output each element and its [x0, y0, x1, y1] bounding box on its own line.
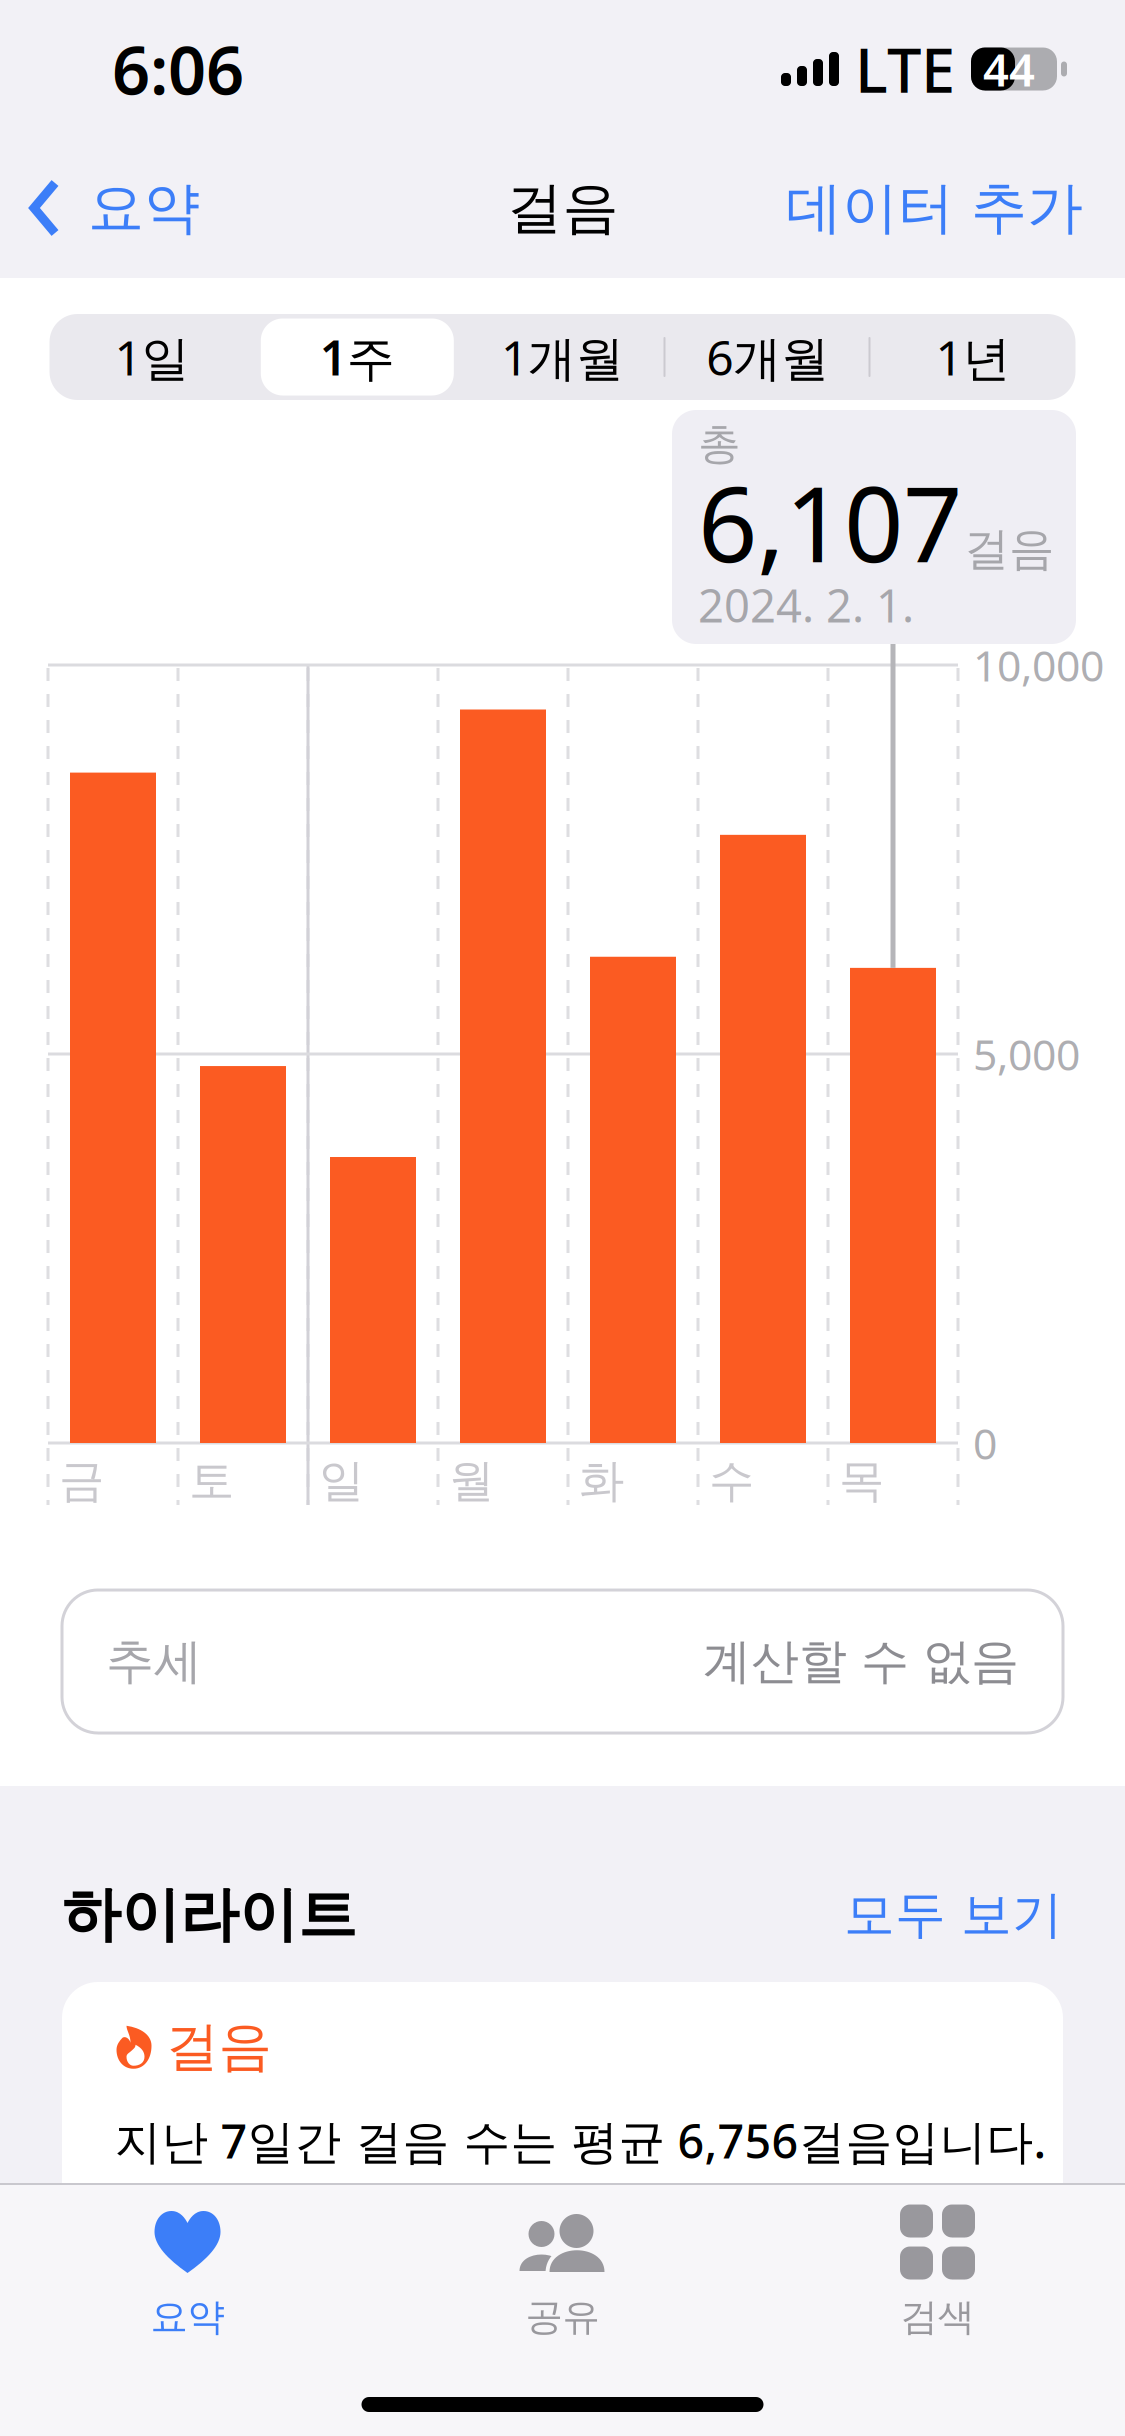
staticText: 6개월 [706, 325, 829, 389]
button[interactable]: 걸음 [62, 1982, 1063, 2242]
staticText: 계산할 수 없음 [703, 1632, 1019, 1691]
button[interactable]: 1개월 [460, 314, 665, 400]
staticText: 하이라이트 [62, 1879, 357, 1951]
button[interactable]: 데이터 추가 [786, 155, 1125, 261]
staticText: 공유 [525, 2294, 599, 2340]
staticText: 걸음 [165, 2014, 271, 2079]
staticText: 요약 [150, 2294, 224, 2340]
staticText: 6,107 [698, 453, 962, 591]
staticText: 요약 [88, 174, 200, 242]
staticText: 검색 [900, 2294, 974, 2340]
button[interactable]: 1년 [870, 314, 1075, 400]
staticText: 2024. 2. 1. [698, 575, 914, 635]
staticText: 지난 7일간 걸음 수는 평균 6,756걸음입니다. [114, 2109, 1046, 2171]
staticText: 1일 [115, 325, 190, 389]
staticText: 일 [319, 1453, 364, 1509]
button[interactable]: 1일 [49, 314, 255, 400]
staticText: 1개월 [501, 325, 624, 389]
staticText: LTE [855, 28, 955, 110]
staticText: 6:06 [112, 25, 244, 113]
button[interactable]: 6개월 [665, 314, 870, 400]
button[interactable]: 1주 [255, 314, 460, 400]
button[interactable]: 모두 보기 [844, 1875, 1063, 1955]
button[interactable]: 요약 [0, 155, 200, 261]
staticText: 1년 [935, 325, 1010, 389]
staticText: 걸음 [506, 174, 618, 242]
button[interactable]: 검색 [750, 2185, 1125, 2335]
staticText: 44 [983, 39, 1035, 99]
staticText: 5,000 [973, 1026, 1080, 1082]
staticText: 데이터 추가 [786, 174, 1083, 242]
staticText: 1주 [320, 325, 395, 389]
staticText: 모두 보기 [844, 1884, 1063, 1946]
button[interactable]: 공유 [375, 2185, 750, 2335]
button[interactable]: 요약 [0, 2185, 375, 2335]
button[interactable]: 추세 [62, 1590, 1063, 1733]
staticText: 10,000 [973, 637, 1104, 693]
staticText: 월 [449, 1453, 494, 1509]
staticText: 추세 [106, 1632, 202, 1691]
staticText: 0 [973, 1415, 997, 1471]
staticText: 목 [839, 1453, 884, 1509]
staticText: 토 [189, 1453, 234, 1509]
staticText: 걸음 [964, 521, 1054, 577]
staticText: 수 [709, 1453, 754, 1509]
staticText: 총 [698, 418, 741, 470]
staticText: 화 [579, 1453, 624, 1509]
staticText: 금 [59, 1453, 104, 1509]
